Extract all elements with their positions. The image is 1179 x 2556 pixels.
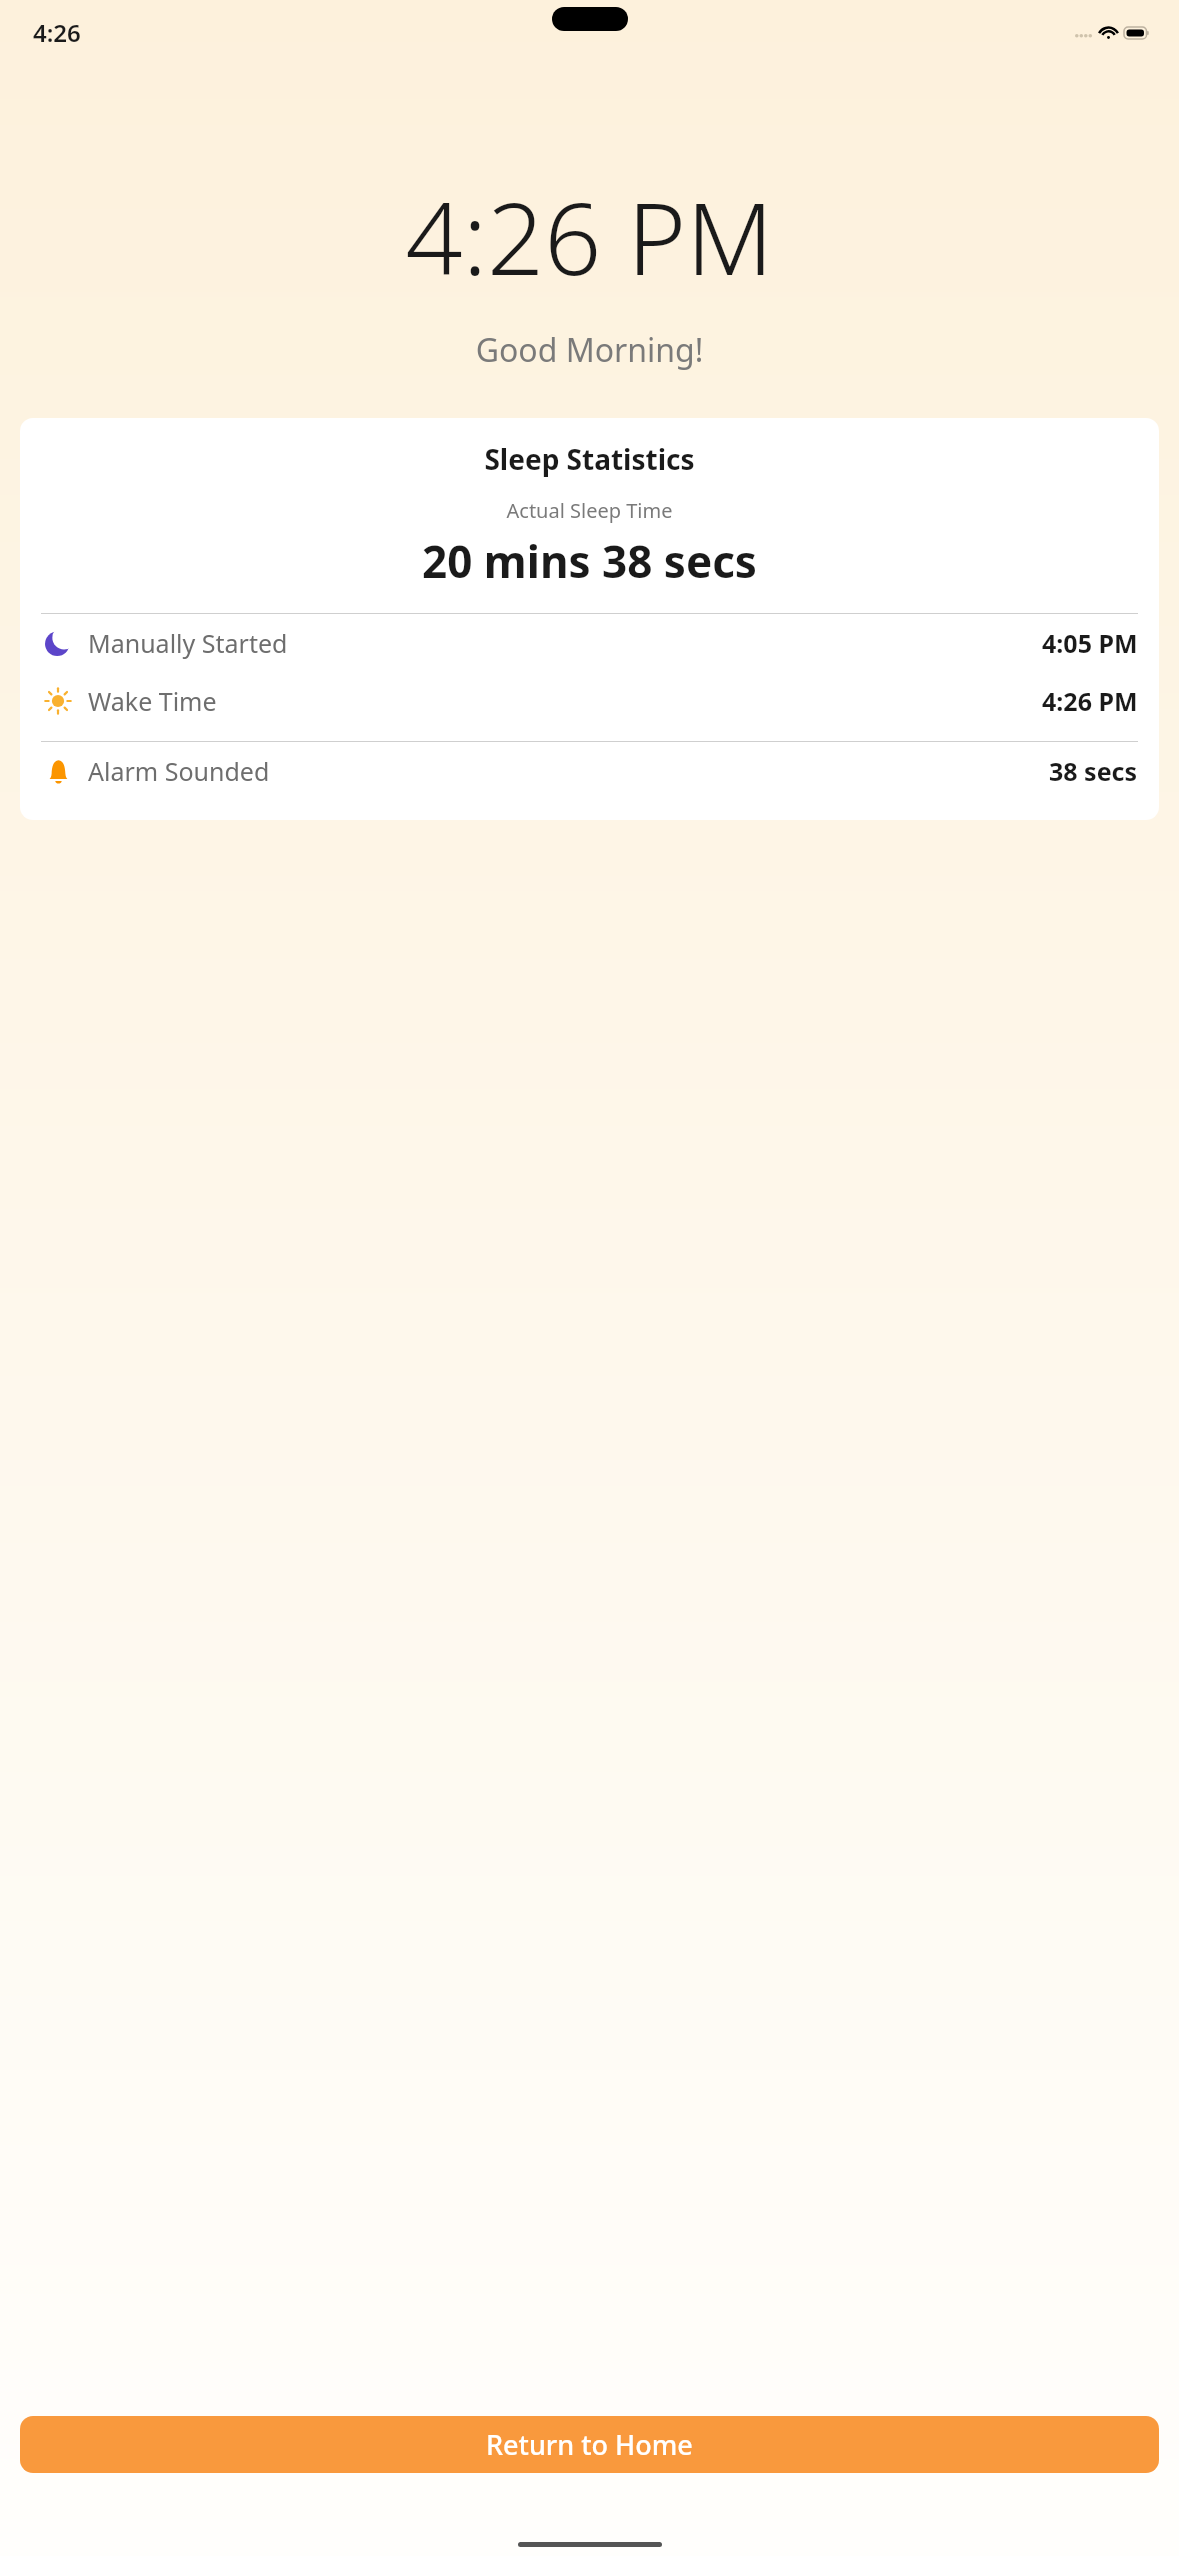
staticText: Good Morning! xyxy=(0,328,1179,372)
staticText: 4:26 PM xyxy=(0,168,1179,304)
staticText: 20 mins 38 secs xyxy=(20,531,1159,591)
staticText: Alarm Sounded xyxy=(88,754,270,788)
staticText: Manually Started xyxy=(88,626,288,660)
button[interactable]: Return to Home xyxy=(20,2416,1159,2473)
staticText: 4:26 xyxy=(33,16,81,49)
staticText: Actual Sleep Time xyxy=(20,497,1159,524)
staticText: 38 secs xyxy=(1049,754,1138,788)
staticText: Return to Home xyxy=(486,2426,693,2463)
staticText: 4:05 PM xyxy=(1042,626,1138,660)
staticText: Wake Time xyxy=(88,684,217,718)
staticText: Sleep Statistics xyxy=(20,440,1159,478)
button[interactable]: Wake Time xyxy=(20,672,1159,730)
button[interactable]: Sleep Statistics xyxy=(20,418,1159,820)
button[interactable]: Manually Started xyxy=(20,614,1159,672)
button[interactable]: Alarm Sounded xyxy=(20,742,1159,800)
staticText: 4:26 PM xyxy=(1042,684,1138,718)
